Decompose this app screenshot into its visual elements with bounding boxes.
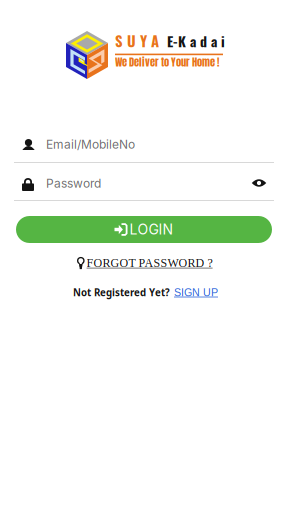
staticText: We Deliver to Your Home ! [115, 54, 219, 70]
staticText: Password [46, 176, 101, 191]
staticText: E-K a d a i [167, 31, 225, 51]
button[interactable]: LOGIN [16, 216, 272, 243]
staticText: FORGOT PASSWORD ? [87, 256, 213, 270]
staticText: LOGIN [129, 221, 173, 238]
staticText: Email/MobileNo [46, 137, 135, 152]
button[interactable]: Show password [246, 170, 272, 196]
button[interactable]: SIGN UP [174, 287, 218, 298]
staticText: Not Registered Yet? [73, 286, 170, 299]
button[interactable]: FORGOT PASSWORD ? [77, 255, 213, 271]
staticText: SIGN UP [174, 287, 218, 298]
staticText: S U Y A [115, 30, 159, 51]
